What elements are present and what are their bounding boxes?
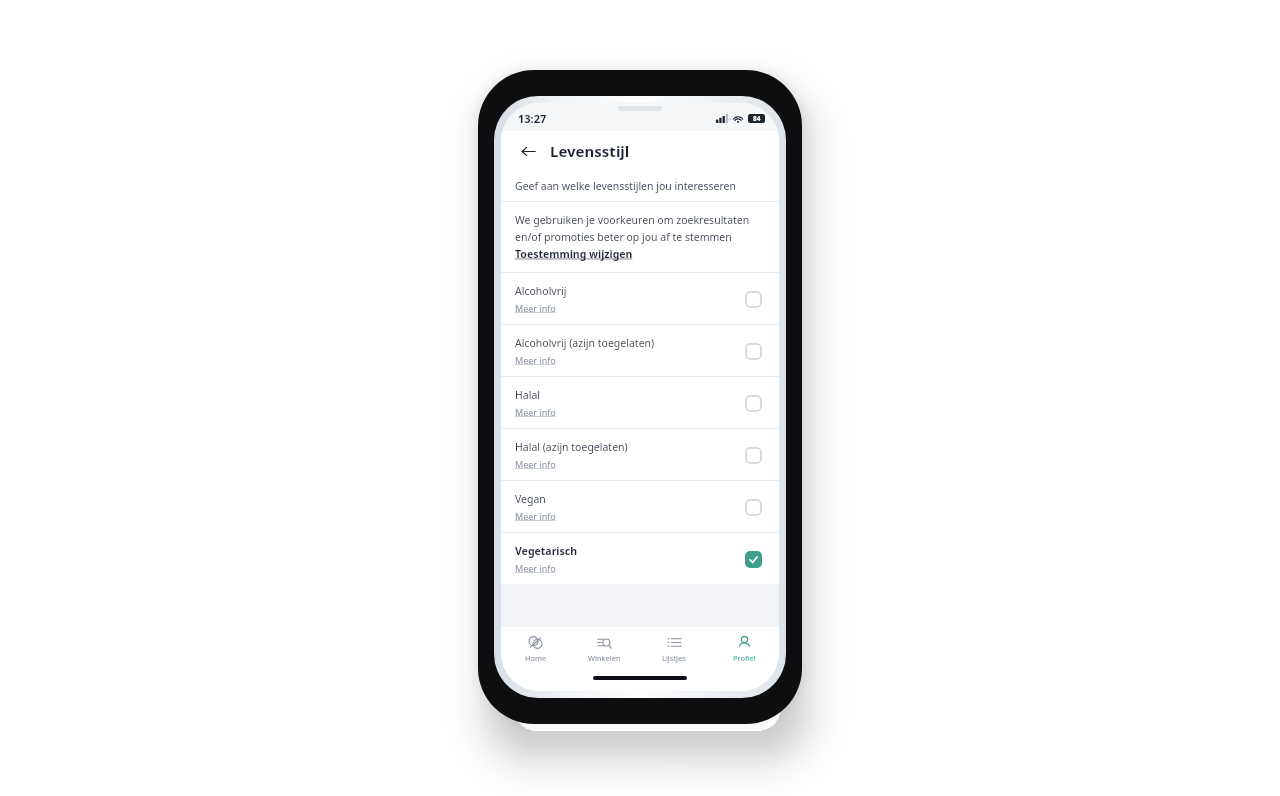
staticText: Toestemming wijzigen	[515, 247, 633, 261]
button[interactable]: Toestemming wijzigen	[515, 247, 633, 261]
staticText: Home	[525, 653, 547, 663]
staticText: Lijstjes	[662, 653, 686, 663]
button[interactable]: Meer info	[515, 458, 556, 470]
staticText: Vegan	[515, 492, 546, 506]
button[interactable]: Alcoholvrij (azijn toegelaten) not selec…	[740, 338, 766, 364]
button[interactable]: Vegetarisch selected	[740, 546, 766, 572]
button[interactable]: Vegan	[501, 481, 779, 532]
staticText: We gebruiken je voorkeuren om zoekresult…	[515, 213, 750, 227]
staticText: en/of promoties beter op jou af te stemm…	[515, 230, 732, 244]
button[interactable]: Meer info	[515, 406, 556, 418]
button[interactable]: Back	[515, 138, 541, 164]
button[interactable]: Profiel	[709, 627, 779, 671]
button[interactable]: Halal (azijn toegelaten)	[501, 429, 779, 480]
button[interactable]: Lijstjes	[639, 627, 709, 671]
staticText: Vegetarisch	[515, 544, 577, 558]
button[interactable]: Halal	[501, 377, 779, 428]
staticText: 84	[753, 114, 761, 123]
button[interactable]: Meer info	[515, 302, 556, 314]
staticText: Alcoholvrij (azijn toegelaten)	[515, 336, 655, 350]
staticText: Halal	[515, 388, 540, 402]
staticText: Profiel	[733, 653, 756, 663]
staticText: Winkelen	[588, 653, 621, 663]
button[interactable]: Winkelen	[570, 627, 639, 671]
button[interactable]: Alcoholvrij	[501, 273, 779, 324]
button[interactable]: Vegetarisch	[501, 533, 779, 584]
button[interactable]: Meer info	[515, 510, 556, 522]
staticText: Alcoholvrij	[515, 284, 567, 298]
button[interactable]: Meer info	[515, 354, 556, 366]
button[interactable]: Halal not selected	[740, 390, 766, 416]
button[interactable]: Halal (azijn toegelaten) not selected	[740, 442, 766, 468]
staticText: 13:27	[518, 111, 547, 126]
button[interactable]: Home	[501, 627, 570, 671]
button[interactable]: Vegan not selected	[740, 494, 766, 520]
staticText: Levensstijl	[550, 141, 630, 161]
button[interactable]: Alcoholvrij not selected	[740, 286, 766, 312]
button[interactable]: Alcoholvrij (azijn toegelaten)	[501, 325, 779, 376]
button[interactable]: Meer info	[515, 562, 556, 574]
staticText: Geef aan welke levensstijlen jou interes…	[515, 179, 737, 193]
staticText: Halal (azijn toegelaten)	[515, 440, 628, 454]
